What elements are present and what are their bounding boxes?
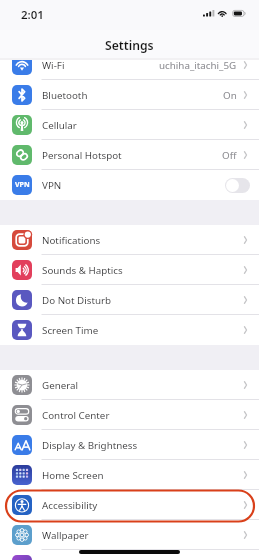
staticText: Do Not Disturb [42,294,241,307]
button[interactable]: Notifications [0,225,259,255]
staticText: Control Center [42,409,241,422]
other: Status icons [203,9,245,21]
button[interactable]: Sounds & Haptics [0,255,259,285]
staticText: Bluetooth [42,89,223,102]
staticText: Screen Time [42,324,241,337]
staticText: VPN [42,179,225,192]
staticText: General [42,379,241,392]
staticText: Home Screen [42,469,241,482]
button[interactable]: Do Not Disturb [0,285,259,315]
button[interactable]: Wallpaper [0,520,259,550]
staticText: On [223,89,237,102]
staticText: Cellular [42,119,241,132]
staticText: Sounds & Haptics [42,264,241,277]
staticText: 2:01 [21,7,44,23]
staticText: Display & Brightness [42,439,241,452]
staticText: uchiha_itachi_5G [159,59,237,72]
staticText: Off [222,149,237,162]
button[interactable]: Display & Brightness [0,430,259,460]
button[interactable]: Home Screen [0,460,259,490]
button[interactable]: VPN [0,170,259,200]
button[interactable]: Wi-Fi [0,50,259,80]
button[interactable]: General [0,370,259,400]
staticText: Settings [105,37,154,54]
button[interactable]: Control Center [0,400,259,430]
button[interactable]: Bluetooth [0,80,259,110]
button[interactable]: Cellular [0,110,259,140]
staticText: Notifications [42,234,241,247]
staticText: Personal Hotspot [42,149,222,162]
staticText: Wallpaper [42,529,241,542]
button[interactable]: Accessibility [0,490,259,520]
button[interactable]: Siri & Search [0,550,259,560]
staticText: VPN [15,180,30,190]
button[interactable]: Screen Time [0,315,259,345]
button[interactable]: Personal Hotspot [0,140,259,170]
staticText: Accessibility [42,499,241,512]
button[interactable]: VPN toggle [225,178,250,193]
staticText: Wi-Fi [42,59,159,72]
